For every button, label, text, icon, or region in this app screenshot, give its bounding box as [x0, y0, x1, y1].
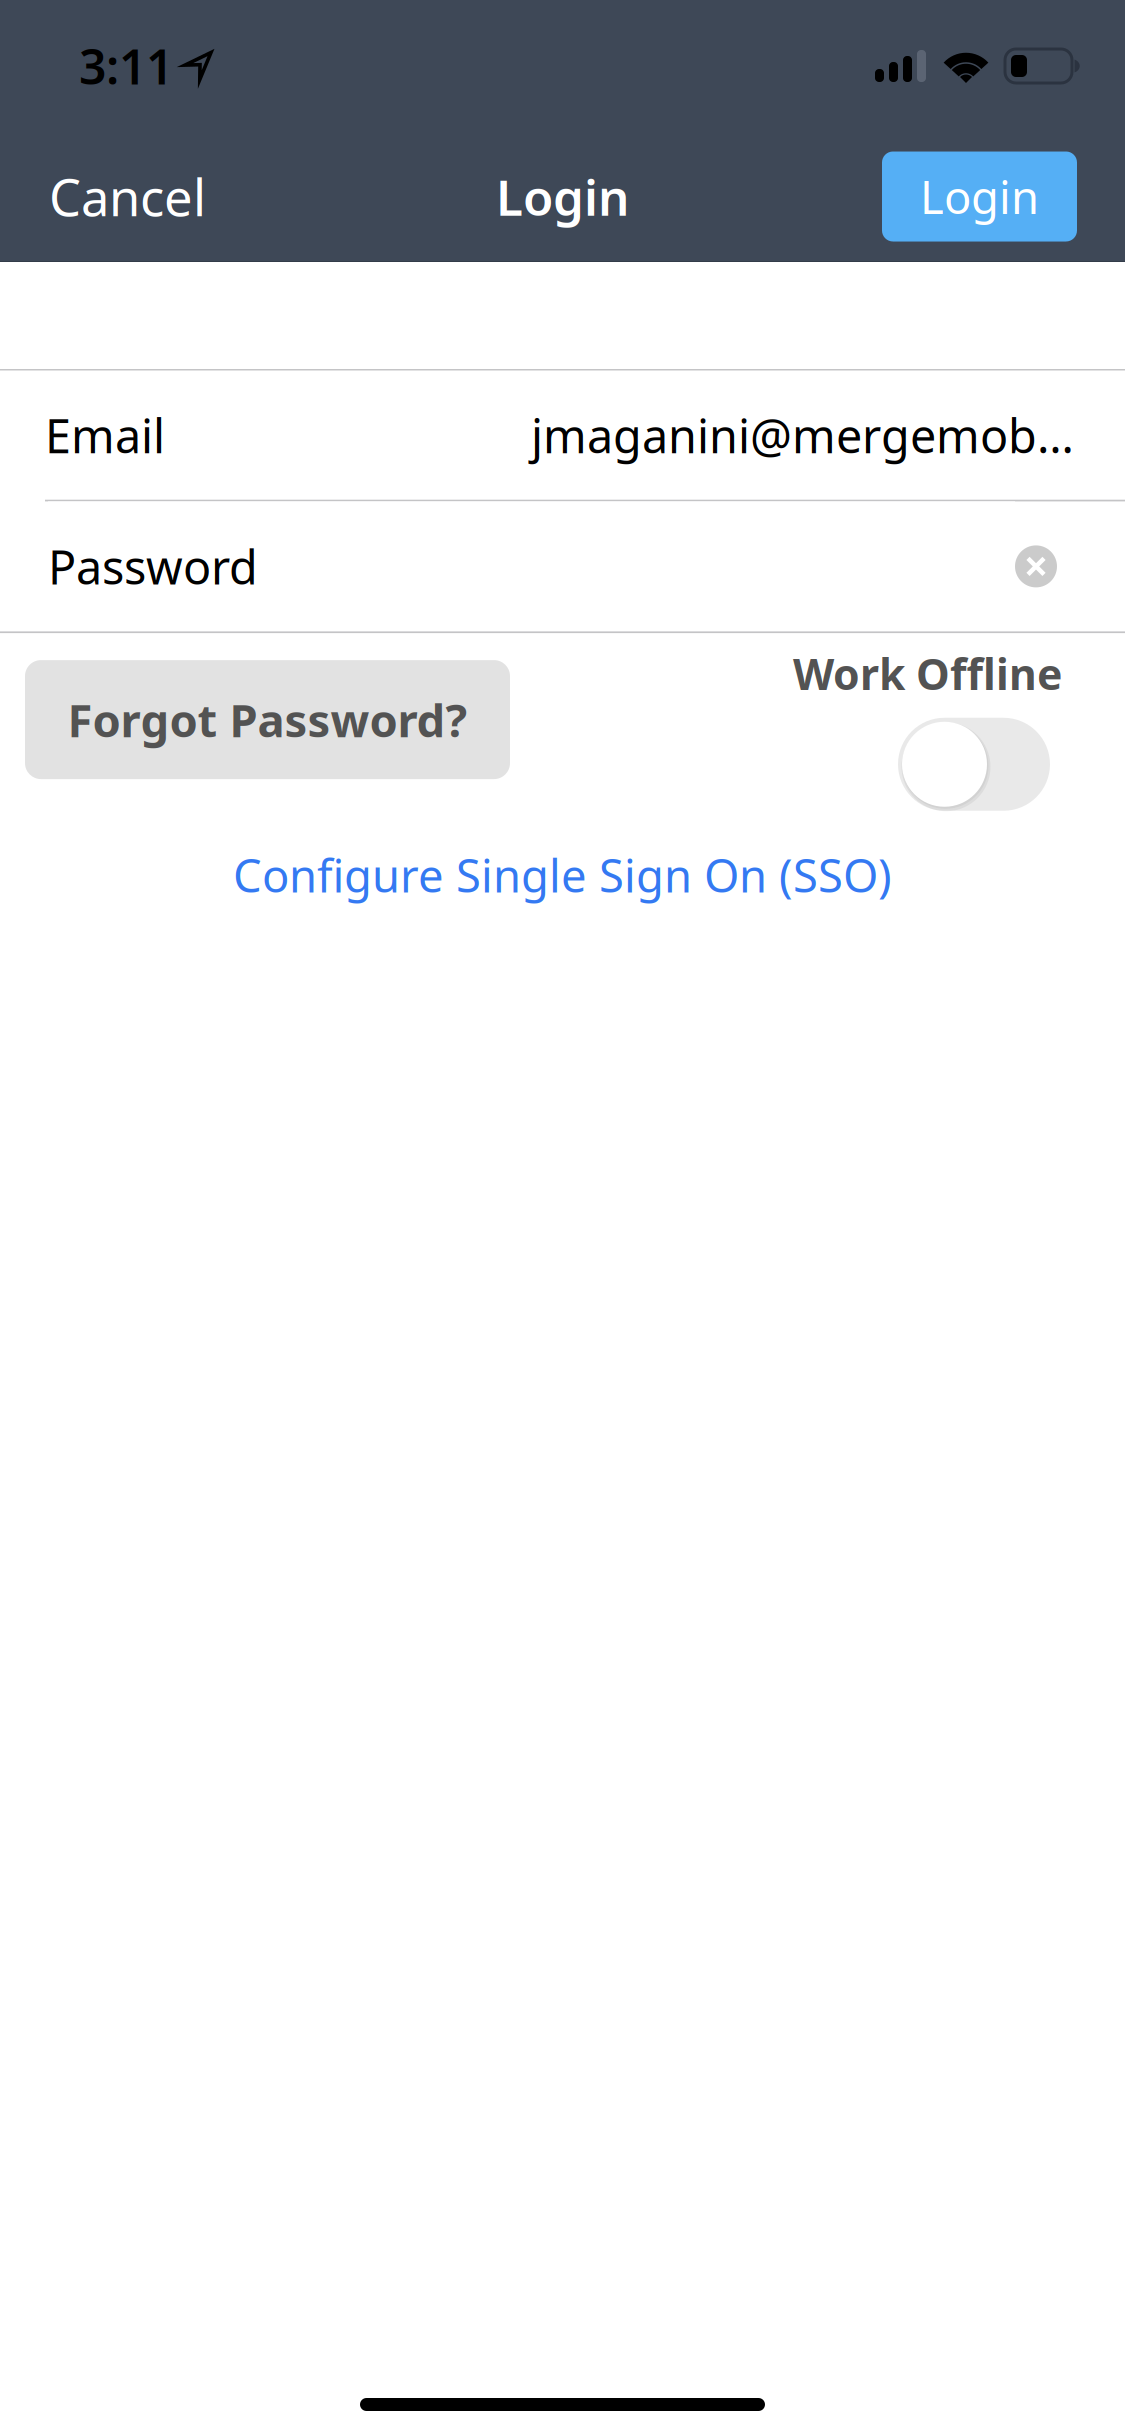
staticText: 3:11: [79, 34, 173, 98]
staticText: Login: [920, 166, 1039, 227]
button[interactable]: Configure Single Sign On (SSO): [0, 833, 1125, 917]
button[interactable]: Password: [48, 501, 1015, 631]
button[interactable]: Work Offline: [898, 718, 1050, 811]
staticText: Configure Single Sign On (SSO): [233, 845, 892, 905]
staticText: Password: [48, 535, 258, 597]
button[interactable]: Clear text: [1015, 545, 1057, 587]
staticText: jmaganini@mergemob…: [531, 404, 1074, 466]
staticText: Forgot Password?: [67, 689, 467, 750]
button[interactable]: Email: [0, 371, 1125, 500]
button[interactable]: Forgot Password?: [25, 660, 510, 779]
staticText: Work Offline: [793, 645, 1062, 702]
staticText: Cancel: [49, 163, 206, 230]
staticText: Email: [45, 404, 165, 466]
button[interactable]: Cancel: [37, 145, 218, 248]
staticText: Login: [496, 164, 629, 229]
button[interactable]: Login: [882, 151, 1077, 241]
